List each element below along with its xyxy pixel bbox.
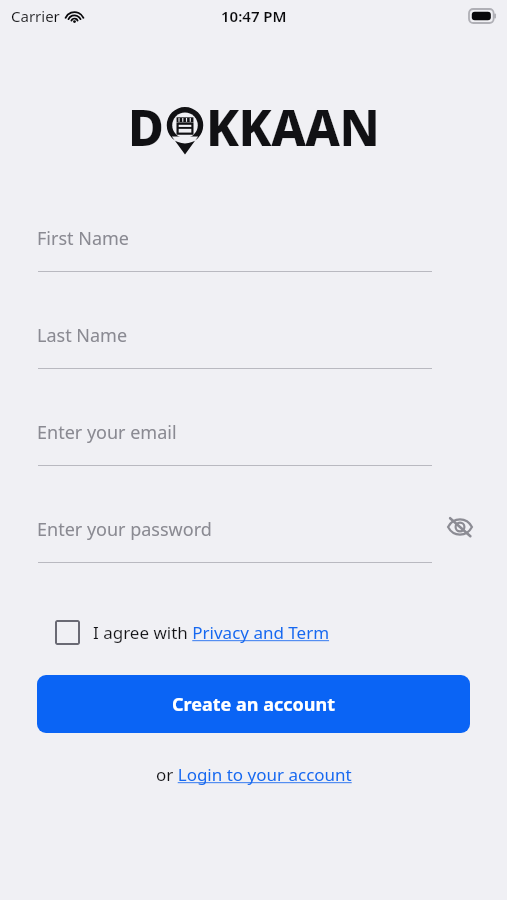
staticText: Last Name (37, 323, 128, 348)
button[interactable]: Last Name (0, 306, 507, 403)
staticText: Enter your email (37, 420, 177, 445)
button[interactable]: Enter your email (0, 403, 507, 500)
button[interactable]: I agree with Privacy and Term (93, 621, 330, 644)
button[interactable]: First Name (0, 209, 507, 306)
staticText: D (128, 94, 164, 161)
button[interactable]: or Login to your account (144, 759, 364, 790)
staticText: KKAAN (206, 94, 380, 161)
staticText: First Name (37, 226, 129, 251)
staticText: Enter your password (37, 517, 212, 542)
staticText: I agree with Privacy and Term (93, 621, 330, 644)
button[interactable]: Enter your password (0, 500, 507, 597)
staticText: Create an account (172, 692, 335, 717)
staticText: 10:47 PM (221, 6, 287, 26)
staticText: or Login to your account (156, 763, 352, 786)
staticText: Carrier (11, 6, 60, 26)
button[interactable]: Show password (441, 508, 479, 546)
button[interactable]: Create an account (37, 675, 470, 733)
button[interactable]: Agree to terms checkbox (54, 619, 80, 645)
